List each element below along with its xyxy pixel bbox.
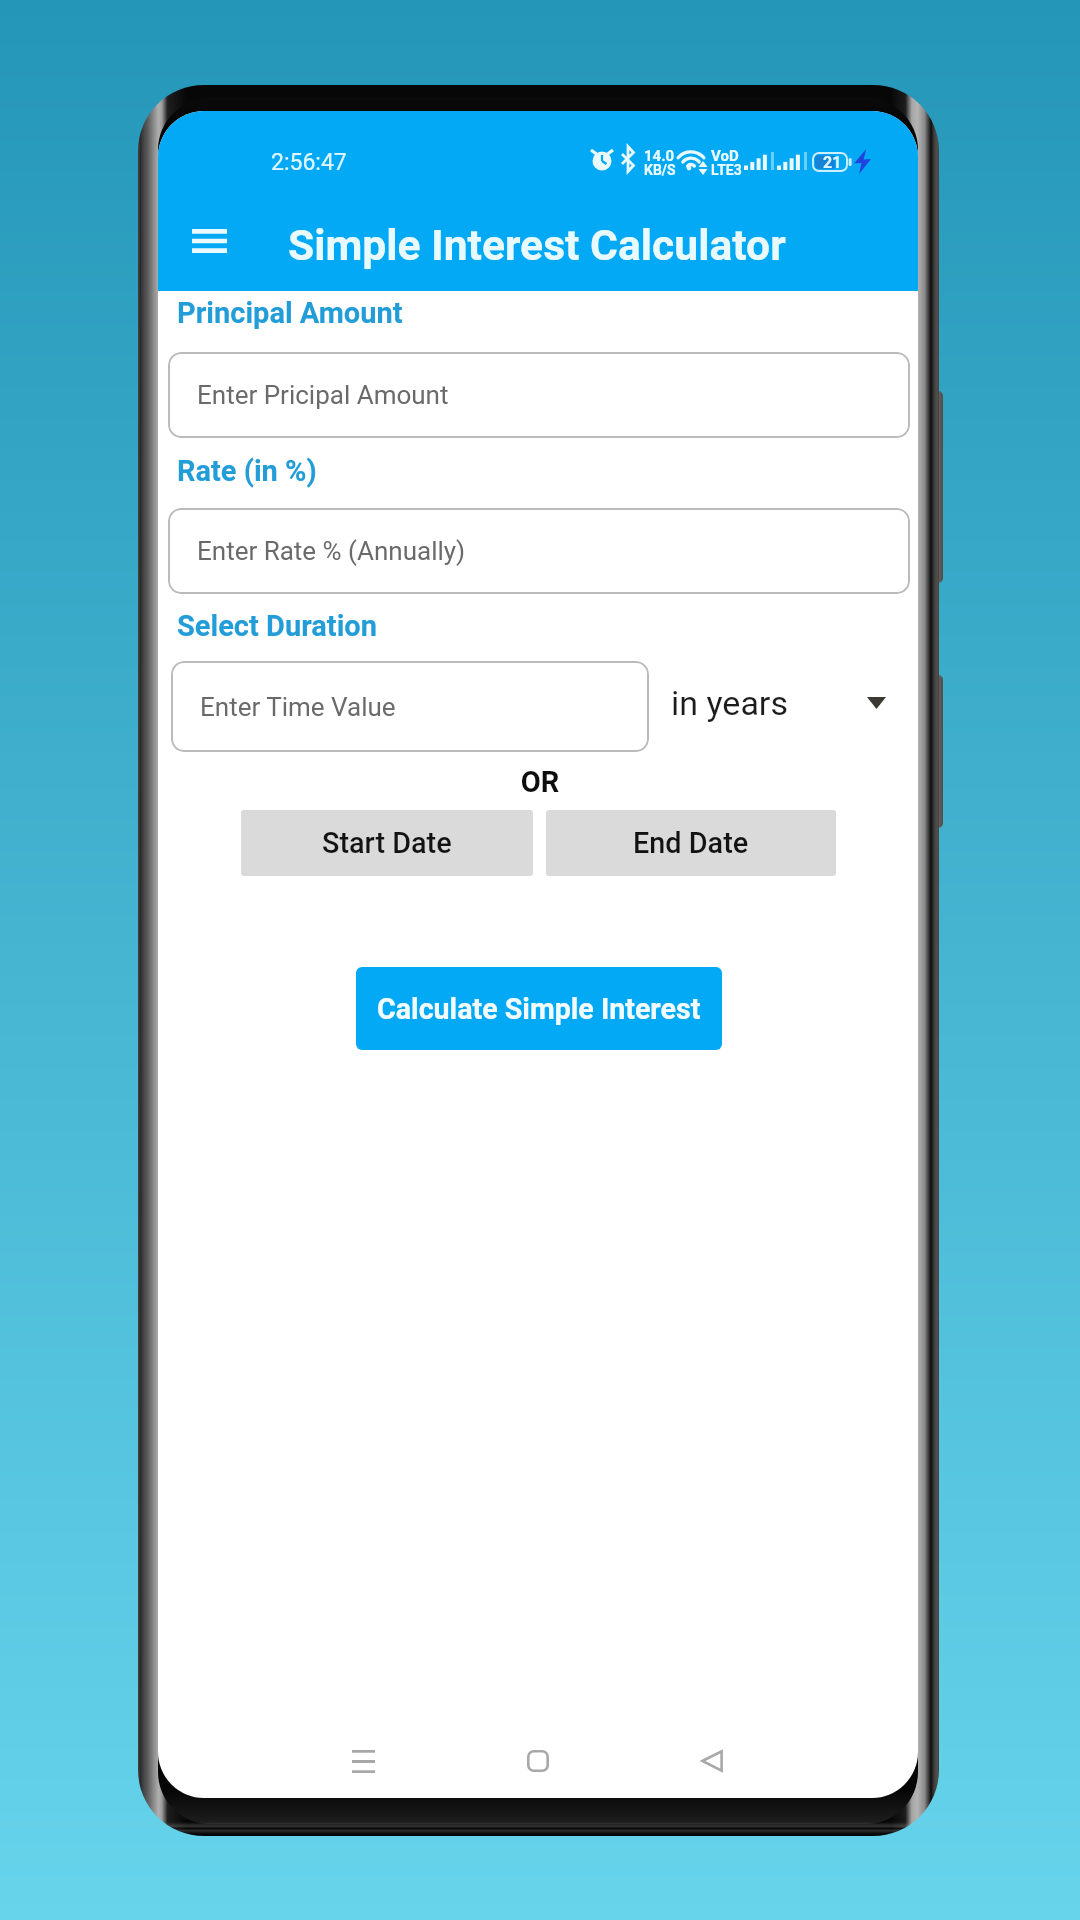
button[interactable]: in years <box>664 665 898 745</box>
staticText: OR <box>519 765 561 799</box>
staticText: Principal Amount <box>177 296 403 330</box>
button[interactable]: Back <box>674 1723 750 1798</box>
staticText: in years <box>671 683 788 723</box>
staticText: End Date <box>633 826 749 860</box>
button[interactable]: Enter Rate % (Annually) <box>168 508 910 594</box>
button[interactable]: Recent apps <box>325 1723 401 1798</box>
staticText: 14.0 <box>644 147 675 165</box>
staticText: LTE3 <box>711 162 742 178</box>
staticText: Calculate Simple Interest <box>377 992 701 1026</box>
button[interactable]: End Date <box>546 810 836 876</box>
staticText: Enter Time Value <box>200 692 396 722</box>
button[interactable]: Start Date <box>241 810 533 876</box>
button[interactable]: Enter Time Value <box>171 661 649 752</box>
button[interactable]: Open navigation drawer <box>167 217 251 265</box>
button[interactable]: Calculate Simple Interest <box>356 967 722 1050</box>
staticText: Start Date <box>322 826 452 860</box>
staticText: Rate (in %) <box>177 454 317 488</box>
staticText: Enter Rate % (Annually) <box>197 536 466 566</box>
staticText: 21 <box>823 153 842 172</box>
staticText: Simple Interest Calculator <box>288 220 786 270</box>
staticText: 2:56:47 <box>271 149 347 176</box>
staticText: Select Duration <box>177 609 377 643</box>
staticText: Enter Pricipal Amount <box>197 380 449 410</box>
staticText: KB/S <box>644 162 676 178</box>
button[interactable]: Enter Pricipal Amount <box>168 352 910 438</box>
staticText: VoD <box>711 147 739 165</box>
button[interactable]: Home <box>500 1723 576 1798</box>
